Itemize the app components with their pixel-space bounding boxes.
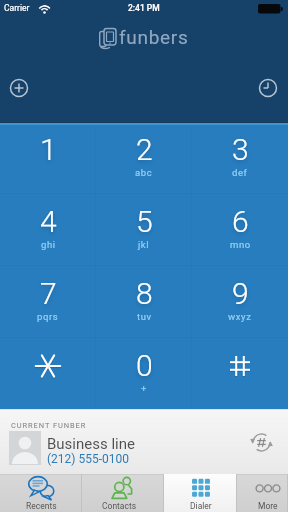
staticText: 8 (136, 276, 153, 311)
staticText: 9 (232, 276, 249, 311)
button[interactable]: 4 (0, 194, 96, 266)
button[interactable]: Contacts (82, 474, 164, 512)
staticText: pqrs (37, 311, 59, 322)
button[interactable]: More (237, 474, 288, 512)
staticText: (212) 555-0100 (47, 452, 130, 466)
button[interactable]: 2 (96, 122, 192, 194)
staticText: + (141, 383, 147, 394)
staticText: def (232, 167, 248, 178)
staticText: jkl (138, 239, 150, 250)
button[interactable] (5, 74, 33, 102)
staticText: ghi (41, 239, 56, 250)
button[interactable]: 1 (0, 122, 96, 194)
staticText: 2:41 PM (128, 3, 160, 13)
button[interactable] (247, 428, 276, 457)
staticText: More (258, 501, 278, 511)
staticText: Recents (26, 501, 57, 511)
button[interactable]: Dialer (164, 474, 237, 512)
staticText: Dialer (190, 501, 212, 511)
staticText: wxyz (228, 311, 252, 322)
button[interactable]: 9 (192, 266, 288, 338)
button[interactable]: 5 (96, 194, 192, 266)
staticText: 5 (136, 204, 153, 239)
staticText: 4 (40, 204, 57, 239)
staticText: 2 (136, 132, 153, 167)
staticText: 6 (232, 204, 249, 239)
button[interactable]: 6 (192, 194, 288, 266)
staticText: abc (135, 167, 153, 178)
button[interactable]: 7 (0, 266, 96, 338)
staticText: CURRENT FUNBER (11, 421, 87, 430)
button[interactable] (254, 74, 282, 102)
staticText: 0 (136, 348, 153, 383)
staticText: Contacts (102, 501, 137, 511)
staticText: mno (230, 239, 251, 250)
button[interactable]: 3 (192, 122, 288, 194)
staticText: Carrier (4, 3, 30, 13)
button[interactable]: 0 (96, 338, 192, 409)
staticText: 1 (40, 132, 57, 167)
staticText: Business line (47, 435, 135, 453)
staticText: 7 (40, 276, 57, 311)
staticText: funbers (119, 26, 189, 48)
button[interactable]: Recents (0, 474, 82, 512)
staticText: tuv (137, 311, 152, 322)
button[interactable] (192, 338, 288, 409)
staticText: 3 (232, 132, 249, 167)
button[interactable]: 8 (96, 266, 192, 338)
button[interactable] (0, 338, 96, 409)
